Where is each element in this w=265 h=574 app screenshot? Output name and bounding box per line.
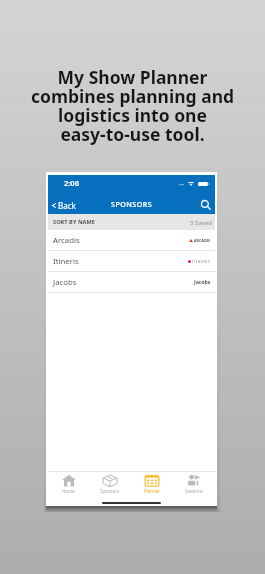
button[interactable]: Arcadis (48, 230, 215, 251)
staticText: Itineris (53, 256, 79, 267)
staticText: Sponsors (100, 488, 120, 494)
staticText: Back (58, 200, 76, 211)
staticText: ITINERIS (192, 259, 211, 264)
staticText: 3 Saved (190, 218, 213, 226)
button[interactable]: Search (197, 197, 215, 213)
staticText: Sessions (185, 488, 203, 494)
button[interactable]: Sessions (173, 472, 215, 492)
button[interactable]: Planner (131, 472, 173, 492)
staticText: Home (62, 488, 75, 494)
button[interactable]: Home (48, 472, 89, 492)
button[interactable]: Itineris (48, 251, 215, 272)
button[interactable]: Sponsors (89, 472, 131, 492)
staticText: SORT BY NAME (53, 218, 95, 226)
staticText: ARCADIS (194, 238, 211, 243)
staticText: My Show Planner combines planning and lo… (10, 65, 255, 146)
staticText: Jacobs (194, 279, 211, 286)
button[interactable]: Jacobs (48, 272, 215, 293)
staticText: Planner (144, 488, 160, 494)
staticText: 2:06 (64, 178, 79, 188)
button[interactable]: Back (48, 196, 82, 215)
staticText: Arcadis (53, 235, 80, 246)
staticText: Jacobs (53, 277, 77, 288)
staticText: SPONSORS (111, 199, 153, 209)
